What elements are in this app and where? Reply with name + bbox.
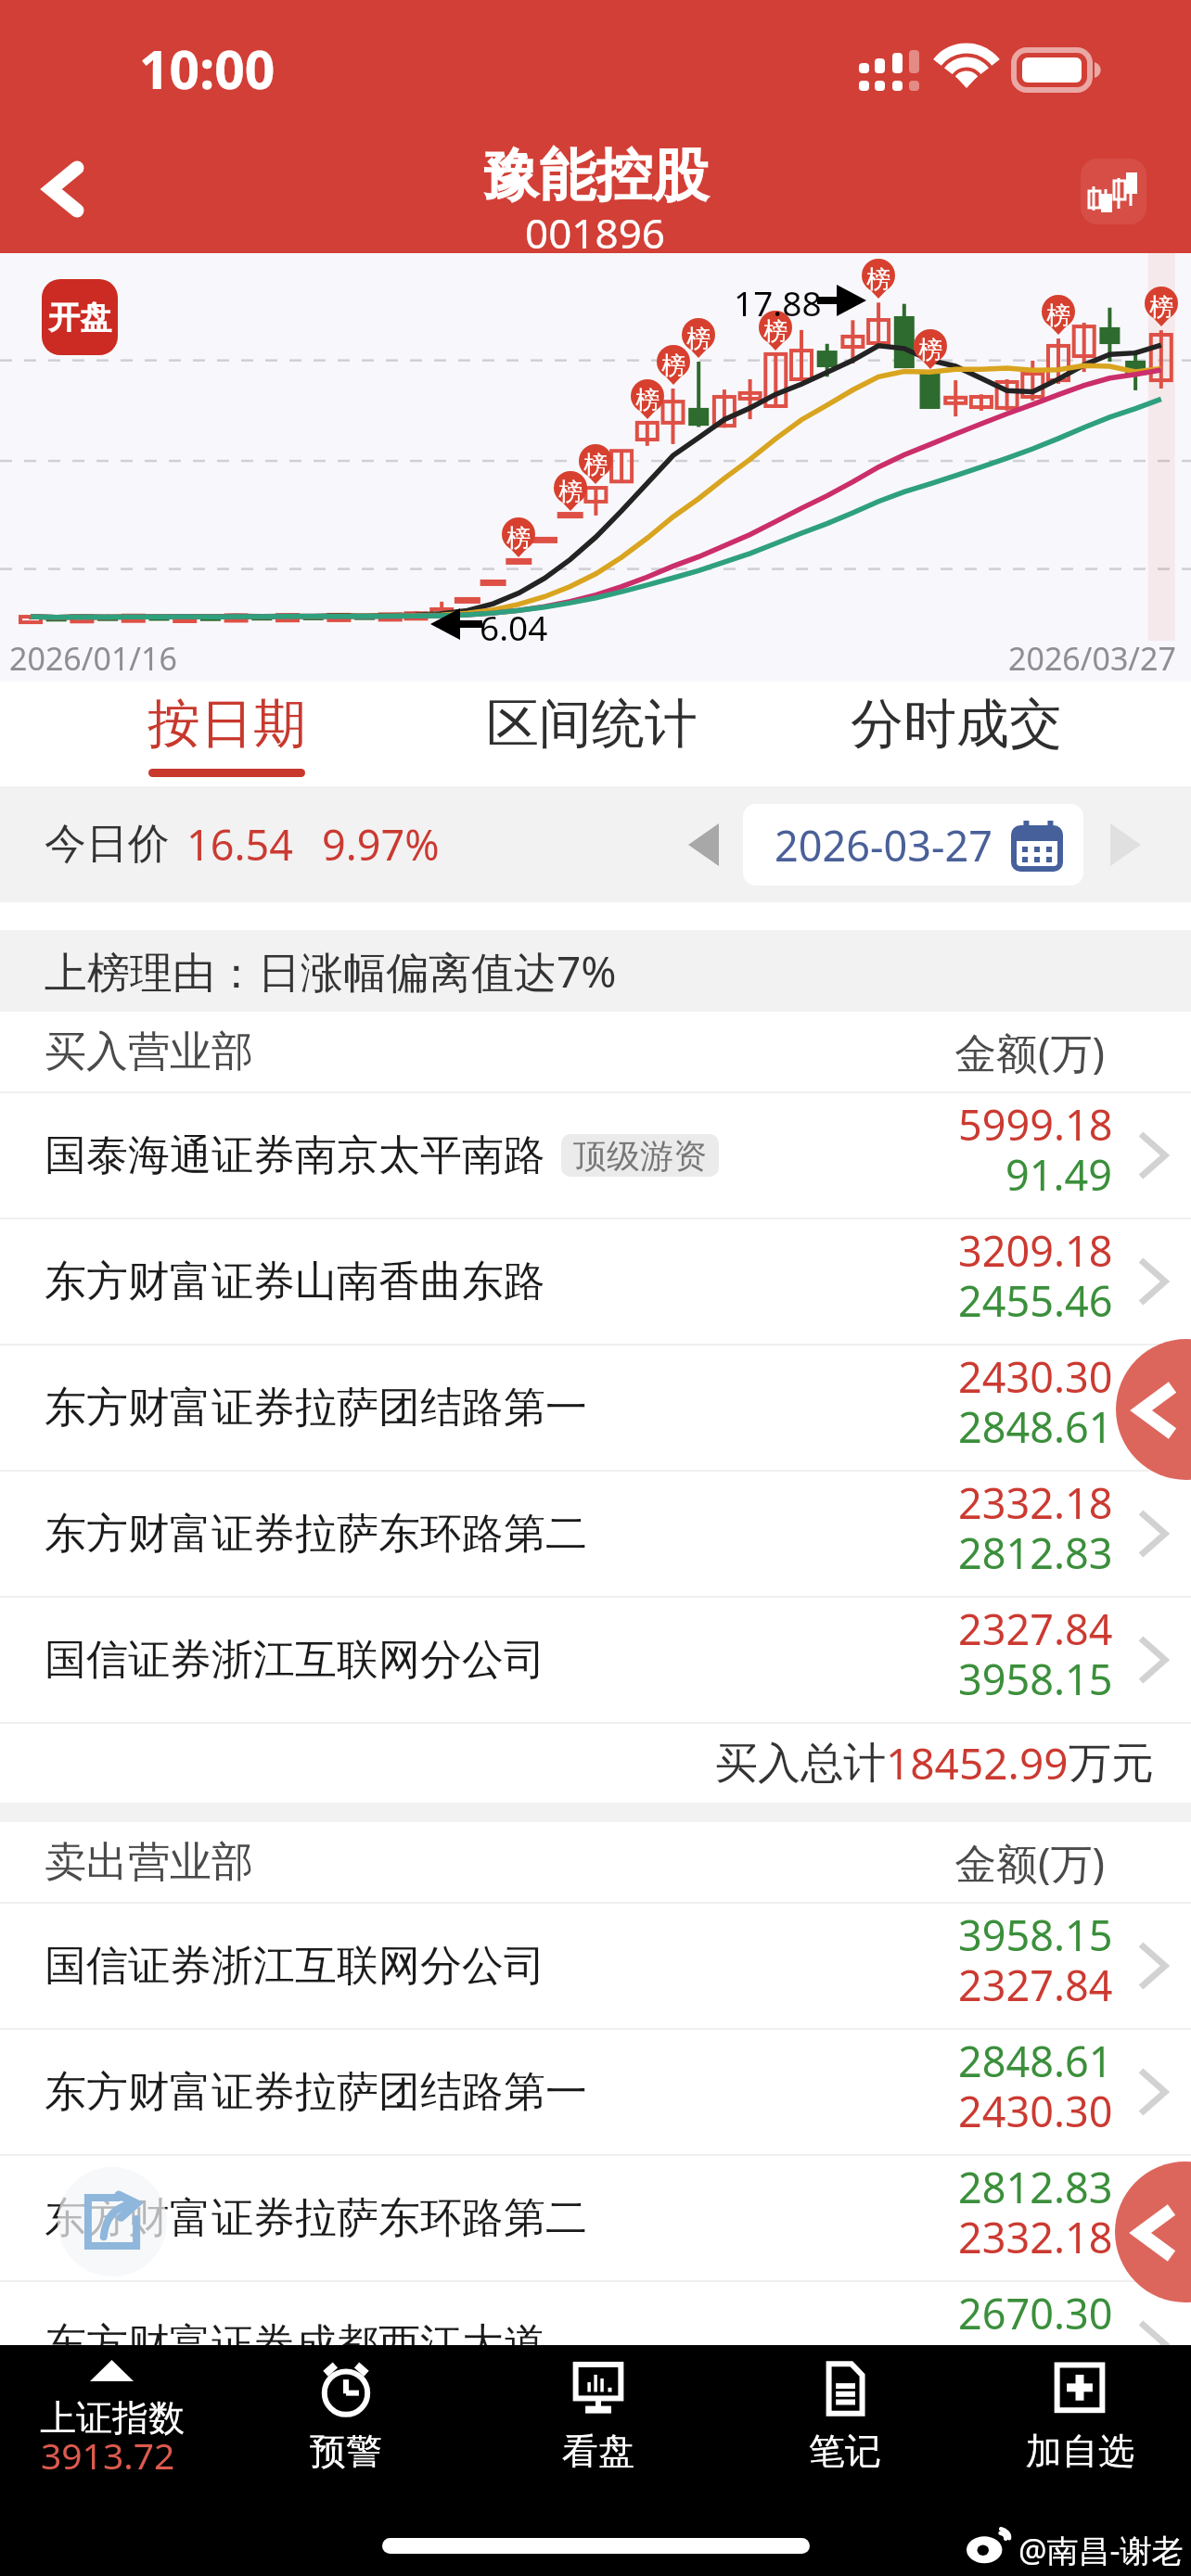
staticText: 上证指数 bbox=[40, 2395, 185, 2441]
button[interactable]: 预警 bbox=[230, 2345, 462, 2475]
staticText: 分时成交 bbox=[851, 691, 1062, 758]
button[interactable]: 东方财富证券拉萨团结路第一 bbox=[0, 2030, 1191, 2156]
staticText: 榜 bbox=[1149, 292, 1173, 323]
staticText: 3958.15 bbox=[958, 1651, 1113, 1707]
staticText: 2455.46 bbox=[958, 1272, 1113, 1329]
staticText: 18452.99 bbox=[886, 1734, 1069, 1792]
button[interactable]: 加自选 bbox=[964, 2345, 1191, 2475]
staticText: 2026/01/16 bbox=[9, 637, 177, 680]
button[interactable]: K line chart bbox=[1081, 159, 1146, 224]
staticText: 2430.30 bbox=[958, 2083, 1113, 2139]
button[interactable]: 笔记 bbox=[729, 2345, 961, 2475]
staticText: 2812.83 bbox=[958, 1524, 1113, 1581]
staticText: 6.04 bbox=[480, 604, 548, 650]
staticText: 东方财富证券拉萨东环路第二 bbox=[45, 1508, 587, 1561]
staticText: 3209.18 bbox=[958, 1222, 1113, 1279]
button[interactable]: 看盘 bbox=[482, 2345, 714, 2475]
button[interactable]: 国泰海通证券南京太平南路 bbox=[0, 1093, 1191, 1219]
staticText: 16.54 bbox=[186, 816, 294, 873]
staticText: 卖出营业部 bbox=[45, 1836, 253, 1889]
staticText: 万元 bbox=[1069, 1737, 1154, 1791]
staticText: 买入营业部 bbox=[45, 1026, 253, 1078]
staticText: 榜 bbox=[661, 351, 685, 381]
staticText: 10:00 bbox=[139, 32, 275, 105]
button[interactable]: Back bbox=[0, 125, 144, 253]
staticText: 东方财富证券山南香曲东路 bbox=[45, 1256, 545, 1308]
staticText: 榜 bbox=[506, 523, 531, 554]
staticText: 2327.84 bbox=[958, 1957, 1113, 2013]
button[interactable]: 国信证券浙江互联网分公司 bbox=[0, 1904, 1191, 2030]
staticText: 金额(万) bbox=[954, 1834, 1106, 1891]
button[interactable]: 东方财富证券拉萨团结路第一 bbox=[0, 1345, 1191, 1472]
staticText: 榜 bbox=[763, 316, 788, 347]
staticText: 榜 bbox=[558, 477, 583, 507]
button[interactable]: 东方财富证券拉萨东环路第二 bbox=[0, 2156, 1191, 2282]
staticText: 东方财富证券成都西江大道 bbox=[45, 2318, 545, 2371]
staticText: 9.97% bbox=[322, 816, 440, 873]
staticText: 榜 bbox=[866, 264, 890, 295]
staticText: 2332.18 bbox=[958, 2209, 1113, 2265]
staticText: 顶级游资 bbox=[573, 1135, 707, 1177]
button[interactable]: 国信证券浙江互联网分公司 bbox=[0, 1598, 1191, 1724]
staticText: 国信证券浙江互联网分公司 bbox=[45, 1634, 545, 1687]
staticText: 看盘 bbox=[562, 2429, 634, 2474]
staticText: 今日价 bbox=[45, 818, 170, 871]
staticText: 预警 bbox=[310, 2429, 382, 2474]
staticText: 3958.15 bbox=[958, 1906, 1113, 1963]
staticText: 3913.72 bbox=[41, 2430, 175, 2480]
staticText: 榜 bbox=[918, 335, 942, 365]
staticText: 开盘 bbox=[48, 298, 111, 338]
staticText: 91.49 bbox=[1005, 1146, 1113, 1203]
button[interactable]: Previous day bbox=[669, 810, 737, 879]
button[interactable]: 2026-03-27 bbox=[743, 804, 1083, 886]
staticText: 2670.30 bbox=[958, 2285, 1113, 2341]
button[interactable]: 分时成交 bbox=[774, 682, 1138, 786]
button[interactable]: Previous bbox=[1115, 2162, 1191, 2302]
button[interactable]: 东方财富证券成都西江大道 bbox=[0, 2282, 1191, 2408]
button[interactable]: 按日期 bbox=[45, 682, 409, 786]
staticText: 买入总计 bbox=[715, 1737, 886, 1791]
staticText: 加自选 bbox=[1026, 2429, 1134, 2474]
button[interactable]: 东方财富证券山南香曲东路 bbox=[0, 1219, 1191, 1345]
staticText: 榜 bbox=[583, 450, 608, 480]
staticText: 17.88 bbox=[734, 279, 822, 325]
button[interactable]: Shanghai index bbox=[0, 2345, 223, 2475]
staticText: 东方财富证券拉萨团结路第一 bbox=[45, 2066, 587, 2119]
staticText: 榜 bbox=[1046, 300, 1070, 331]
button[interactable]: Share bbox=[58, 2167, 167, 2276]
staticText: 豫能控股 bbox=[482, 140, 709, 211]
staticText: 榜 bbox=[686, 324, 711, 354]
staticText: 001896 bbox=[525, 205, 666, 261]
staticText: 国泰海通证券南京太平南路 bbox=[45, 1129, 545, 1182]
button[interactable]: 区间统计 bbox=[409, 682, 774, 786]
button[interactable]: Previous bbox=[1116, 1339, 1191, 1480]
staticText: 2812.83 bbox=[958, 2159, 1113, 2215]
staticText: 2848.61 bbox=[958, 1398, 1113, 1455]
staticText: 2430.30 bbox=[958, 1348, 1113, 1405]
staticText: 5999.18 bbox=[958, 1096, 1113, 1153]
staticText: 2327.84 bbox=[958, 1600, 1113, 1657]
staticText: 国信证券浙江互联网分公司 bbox=[45, 1940, 545, 1993]
staticText: 2332.18 bbox=[958, 1474, 1113, 1531]
staticText: 东方财富证券拉萨团结路第一 bbox=[45, 1382, 587, 1435]
staticText: @南昌-谢老 bbox=[1018, 2529, 1184, 2571]
staticText: 2848.61 bbox=[958, 2033, 1113, 2089]
button[interactable]: Next day bbox=[1091, 810, 1159, 879]
staticText: 按日期 bbox=[147, 691, 306, 758]
staticText: 笔记 bbox=[809, 2429, 881, 2474]
staticText: 区间统计 bbox=[486, 691, 698, 758]
staticText: 上榜理由：日涨幅偏离值达7% bbox=[45, 942, 617, 1001]
staticText: 金额(万) bbox=[954, 1024, 1106, 1080]
staticText: 1530.20 bbox=[958, 2335, 1113, 2391]
button[interactable]: 东方财富证券拉萨东环路第二 bbox=[0, 1472, 1191, 1598]
staticText: 2026/03/27 bbox=[1008, 637, 1176, 680]
staticText: 榜 bbox=[635, 385, 660, 415]
staticText: 东方财富证券拉萨东环路第二 bbox=[45, 2192, 587, 2245]
staticText: 2026-03-27 bbox=[775, 817, 992, 874]
